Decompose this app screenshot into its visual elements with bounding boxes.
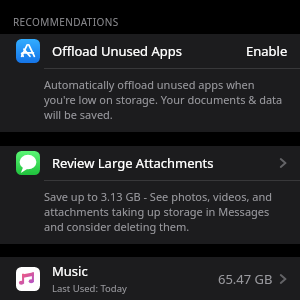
staticText: Automatically offload unused apps when y… [44, 77, 286, 122]
staticText: Save up to 3.13 GB - See photos, videos,… [44, 189, 286, 234]
other: Open [279, 272, 287, 286]
button[interactable]: Review Large Attachments [0, 146, 300, 180]
staticText: Offload Unused Apps [52, 42, 183, 60]
staticText: 65.47 GB [218, 270, 273, 288]
other: Open [279, 156, 287, 170]
staticText: Review Large Attachments [52, 154, 214, 172]
staticText: Enable [246, 42, 288, 60]
button[interactable]: Offload Unused Apps [0, 34, 300, 68]
staticText: RECOMMENDATIONS [13, 15, 119, 29]
staticText: Last Used: Today [52, 282, 127, 295]
button[interactable]: Music [0, 257, 300, 300]
staticText: Music [52, 262, 88, 280]
